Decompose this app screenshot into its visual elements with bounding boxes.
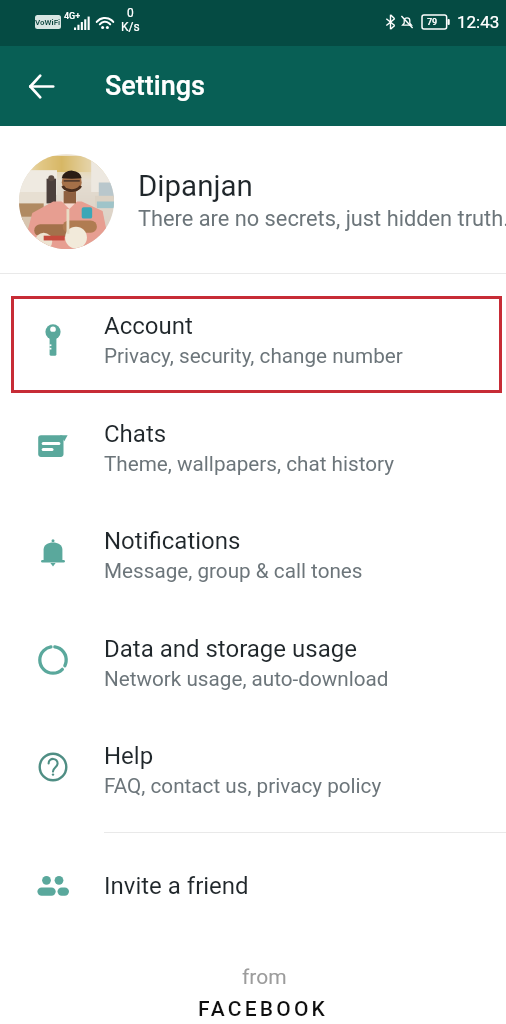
staticText: Privacy, security, change number	[104, 344, 403, 368]
staticText: Network usage, auto-download	[104, 667, 389, 691]
button[interactable]: Invite a friend	[0, 847, 506, 925]
button[interactable]: Dipanjan	[0, 126, 506, 273]
staticText: Notifications	[104, 527, 241, 555]
staticText: There are no secrets, just hidden truth…	[138, 206, 506, 232]
staticText: Theme, wallpapers, chat history	[104, 452, 395, 476]
button[interactable]: Notifications	[0, 502, 506, 598]
button[interactable]: Help	[0, 717, 506, 813]
staticText: VoWiFi	[35, 18, 61, 27]
staticText: Message, group & call tones	[104, 559, 363, 583]
staticText: Help	[104, 742, 154, 770]
button[interactable]: Back	[17, 62, 65, 110]
staticText: Data and storage usage	[104, 635, 357, 663]
staticText: 0	[127, 6, 134, 20]
staticText: Invite a friend	[104, 872, 249, 900]
staticText: 12:43	[457, 12, 500, 32]
staticText: Settings	[105, 70, 205, 102]
button[interactable]: Chats	[0, 395, 506, 491]
button[interactable]: Account	[0, 287, 506, 383]
staticText: 4G+	[64, 11, 81, 22]
staticText: from	[242, 965, 287, 990]
staticText: Account	[104, 312, 193, 340]
staticText: FAQ, contact us, privacy policy	[104, 774, 382, 798]
button[interactable]: Data and storage usage	[0, 610, 506, 706]
staticText: 79	[427, 17, 438, 28]
staticText: Dipanjan	[138, 169, 253, 204]
staticText: K/s	[121, 20, 140, 34]
staticText: FACEBOOK	[198, 997, 329, 1022]
staticText: Chats	[104, 420, 167, 448]
